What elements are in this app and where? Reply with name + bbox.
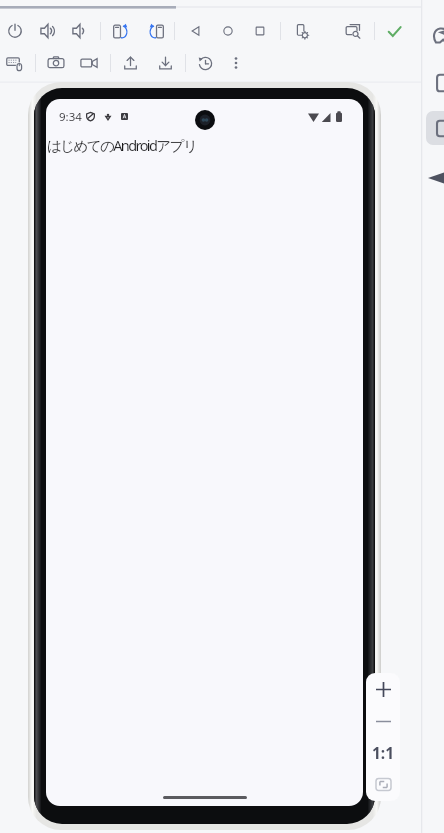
button[interactable]: Download from device xyxy=(151,49,179,77)
button[interactable]: 1:1 xyxy=(366,736,400,768)
button[interactable]: Power xyxy=(1,17,29,45)
button[interactable]: Upload to device xyxy=(116,49,144,77)
staticText: 9:34 xyxy=(59,109,82,125)
button[interactable]: Back xyxy=(182,17,210,45)
button[interactable]: Fit to screen xyxy=(366,768,400,800)
button[interactable]: Rotate left xyxy=(107,17,135,45)
button[interactable]: Zoom out xyxy=(366,705,400,737)
button[interactable]: More options xyxy=(222,49,250,77)
button[interactable]: Running Devices xyxy=(426,111,444,145)
button[interactable]: Device settings xyxy=(288,17,316,45)
button[interactable]: Inspect layout xyxy=(339,17,367,45)
button[interactable]: Record screen xyxy=(75,49,103,77)
button[interactable]: Device Explorer xyxy=(436,74,444,92)
button[interactable]: History xyxy=(191,49,219,77)
button[interactable]: Overview xyxy=(246,17,274,45)
staticText: 1:1 xyxy=(372,742,395,763)
staticText: はじめてのAndroidアプリ xyxy=(47,135,196,155)
button[interactable]: Rotate right xyxy=(141,17,169,45)
button[interactable]: Home xyxy=(214,17,242,45)
button[interactable]: Gemini xyxy=(432,26,444,44)
button[interactable]: Take screenshot xyxy=(42,49,70,77)
other: Collapse panel xyxy=(428,170,444,186)
button[interactable]: Zoom in xyxy=(366,673,400,705)
button[interactable]: Volume up xyxy=(33,17,61,45)
button[interactable]: Volume down xyxy=(65,17,93,45)
button[interactable]: Keyboard and mouse input xyxy=(1,49,29,77)
button[interactable]: Run xyxy=(380,17,408,45)
